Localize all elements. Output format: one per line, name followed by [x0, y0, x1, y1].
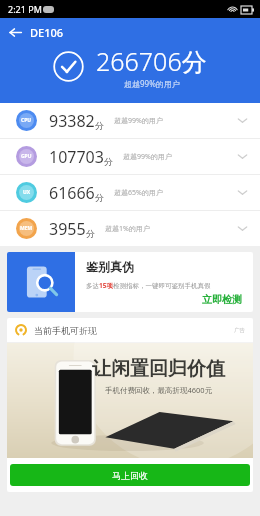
- staticText: 超越99%的用户: [123, 152, 172, 162]
- staticText: MEM: [20, 225, 33, 232]
- staticText: DE106: [30, 25, 64, 40]
- staticText: 当前手机可折现: [34, 325, 97, 336]
- staticText: GPU: [21, 153, 32, 160]
- staticText: UX: [23, 189, 31, 196]
- staticText: 多达15项检测指标，一键即可鉴别手机真假: [86, 281, 211, 290]
- button[interactable]: 马上回收: [10, 464, 250, 486]
- button[interactable]: Back: [0, 18, 30, 46]
- staticText: 超越65%的用户: [114, 188, 163, 198]
- staticText: 2:21 PM: [8, 3, 42, 15]
- staticText: CPU: [21, 117, 32, 124]
- staticText: 超越1%的用户: [105, 224, 150, 234]
- staticText: 让闲置回归价值: [92, 357, 225, 381]
- staticText: 鉴别真伪: [86, 259, 134, 274]
- staticText: 3955: [49, 218, 86, 240]
- staticText: 分: [86, 228, 95, 239]
- staticText: 手机付费回收，最高折现4600元: [105, 385, 213, 395]
- button[interactable]: CPU: [0, 103, 260, 138]
- staticText: 超越99%的用户: [124, 78, 180, 89]
- button[interactable]: GPU: [0, 139, 260, 174]
- button[interactable]: UX: [0, 175, 260, 210]
- staticText: 广告: [234, 327, 245, 334]
- button[interactable]: 让闲置回归价值: [7, 343, 253, 458]
- staticText: 分: [104, 156, 113, 167]
- staticText: 266706分: [96, 44, 207, 78]
- button[interactable]: 立即检测: [200, 291, 244, 308]
- staticText: 93382: [49, 110, 95, 132]
- button[interactable]: MEM: [0, 211, 260, 246]
- staticText: 分: [95, 120, 104, 131]
- button[interactable]: 鉴别真伪: [7, 252, 253, 312]
- staticText: 分: [95, 192, 104, 203]
- staticText: 马上回收: [112, 470, 148, 481]
- staticText: 61666: [49, 182, 95, 204]
- staticText: 107703: [49, 146, 104, 168]
- staticText: 超越99%的用户: [114, 116, 163, 126]
